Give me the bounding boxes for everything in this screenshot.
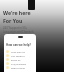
button[interactable]: Email us — [4, 57, 36, 61]
staticText: 24/7 Support in 50+ — [3, 26, 27, 30]
button[interactable]: Chat with us — [4, 49, 36, 53]
button[interactable]: Report issue — [4, 65, 36, 69]
staticText: Languages and Channels — [3, 30, 34, 34]
button[interactable]: FAQ & guides — [4, 61, 36, 65]
staticText: FAQ & guides — [11, 62, 27, 65]
button[interactable]: Call support — [4, 53, 36, 57]
staticText: Chat with us — [11, 50, 25, 53]
staticText: Report issue — [11, 66, 25, 69]
staticText: How can we help? — [6, 43, 31, 47]
staticText: Call support — [11, 54, 25, 57]
staticText: Email us — [11, 58, 21, 61]
staticText: We're here — [3, 9, 31, 16]
staticText: For You — [3, 17, 23, 24]
